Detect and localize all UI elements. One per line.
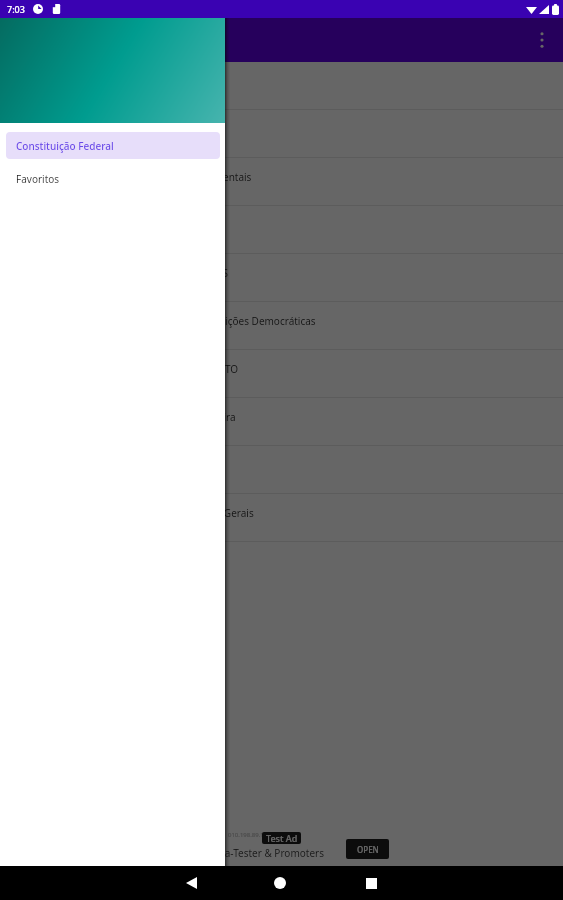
button[interactable]: PREÂMBULO: [0, 62, 563, 110]
button[interactable]: TÍTULO VII - Da Ordem Econômica e Financ…: [0, 398, 563, 446]
button[interactable]: Constituição Federal: [6, 132, 220, 159]
button[interactable]: Favoritos: [6, 165, 220, 192]
staticText: TÍTULO II - Dos Direitos e Garantias Fun…: [16, 170, 252, 184]
button[interactable]: TÍTULO III - Da Organização do Estado: [0, 206, 563, 254]
button[interactable]: TÍTULO II - Dos Direitos e Garantias Fun…: [0, 158, 563, 206]
staticText: TÍTULO IV - DA ORGANIZAÇÃO DOS PODERES: [16, 266, 228, 280]
staticText: TÍTULO V - Da Defesa do Estado e das Ins…: [16, 314, 316, 328]
staticText: TÍTULO VI - DA TRIBUTAÇÃO E DO ORÇAMENTO: [16, 362, 239, 376]
staticText: TÍTULO IX - Das Disposições Constitucion…: [16, 506, 254, 520]
staticText: 7:03: [7, 3, 25, 15]
button[interactable]: TÍTULO IV - DA ORGANIZAÇÃO DOS PODERES: [0, 254, 563, 302]
button[interactable]: Home: [263, 866, 297, 900]
staticText: Constituição Federal: [58, 30, 205, 50]
button[interactable]: TÍTULO VI - DA TRIBUTAÇÃO E DO ORÇAMENTO: [0, 350, 563, 398]
button[interactable]: Back: [174, 866, 208, 900]
staticText: TÍTULO I - Dos Princípios Fundamentais: [16, 122, 202, 136]
staticText: TÍTULO VII - Da Ordem Econômica e Financ…: [16, 410, 236, 424]
staticText: PREÂMBULO: [16, 74, 76, 88]
staticText: Constituição Federal: [16, 139, 114, 153]
staticText: Favoritos: [16, 172, 60, 186]
staticText: OPEN: [357, 844, 379, 855]
button[interactable]: Recent apps: [354, 866, 388, 900]
button[interactable]: TÍTULO V - Da Defesa do Estado e das Ins…: [0, 302, 563, 350]
staticText: Test Ad: [266, 832, 298, 844]
button[interactable]: More options: [522, 20, 562, 60]
button[interactable]: OPEN: [346, 839, 389, 859]
button[interactable]: TÍTULO I - Dos Princípios Fundamentais: [0, 110, 563, 158]
staticText: Beta-Tester & Promoters: [209, 846, 324, 860]
button[interactable]: TÍTULO VIII - Da Ordem Social: [0, 446, 563, 494]
button[interactable]: TÍTULO IX - Das Disposições Constitucion…: [0, 494, 563, 542]
staticText: 010.198.89.17: [228, 831, 268, 839]
